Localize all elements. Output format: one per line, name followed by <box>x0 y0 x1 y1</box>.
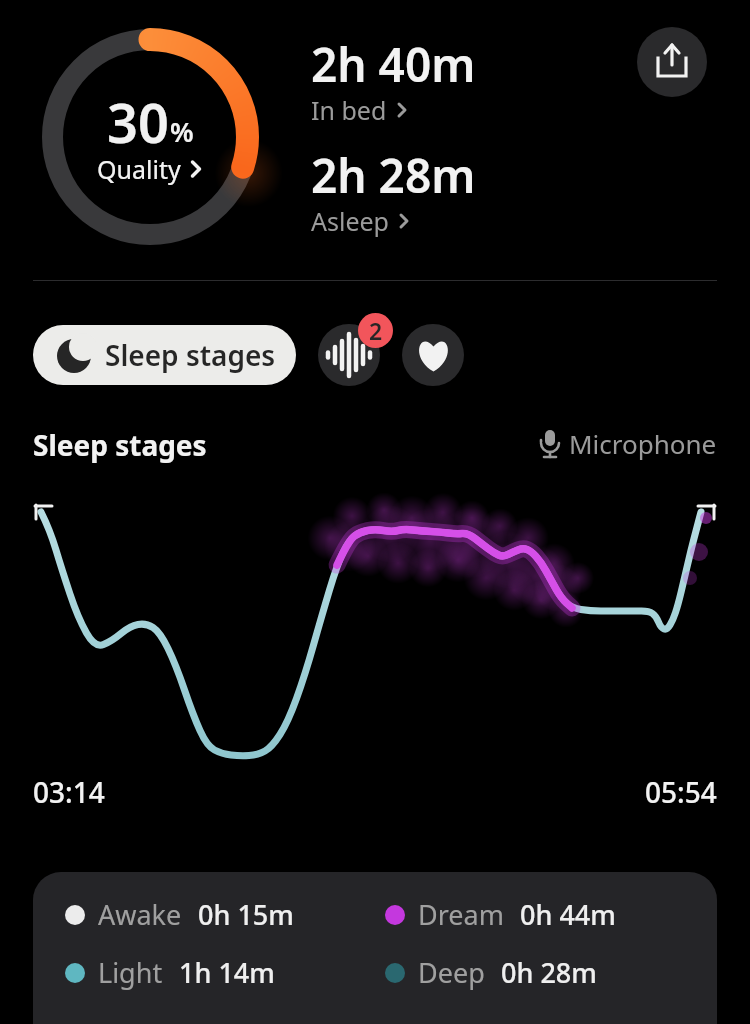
button[interactable]: Light <box>65 954 275 991</box>
staticText: 2h 40m <box>311 33 476 96</box>
staticText: 2h 28m <box>311 144 476 207</box>
staticText: 30 <box>107 85 169 159</box>
staticText: In bed <box>311 93 387 127</box>
button[interactable]: Sleep stages <box>33 325 296 385</box>
staticText: Light <box>98 954 163 991</box>
staticText: Sleep stages <box>105 336 276 374</box>
staticText: 0h 44m <box>520 896 616 933</box>
button[interactable] <box>637 27 707 97</box>
staticText: 03:14 <box>33 773 105 811</box>
staticText: % <box>170 113 194 150</box>
button[interactable]: Microphone <box>539 426 717 461</box>
button[interactable]: In bed <box>311 93 409 127</box>
staticText: Quality <box>97 152 181 186</box>
staticText: 2 <box>369 315 383 346</box>
button[interactable]: Awake <box>65 896 294 933</box>
button[interactable]: Dream <box>385 896 616 933</box>
button[interactable]: Asleep <box>311 204 411 238</box>
staticText: Dream <box>418 896 504 933</box>
staticText: Sleep stages <box>33 426 207 464</box>
staticText: 05:54 <box>645 773 717 811</box>
staticText: Microphone <box>569 426 717 461</box>
button[interactable]: 30 <box>42 29 258 245</box>
button[interactable]: Deep <box>385 954 597 991</box>
staticText: Deep <box>418 954 485 991</box>
staticText: 0h 28m <box>501 954 597 991</box>
staticText: 0h 15m <box>198 896 294 933</box>
button[interactable] <box>318 324 380 386</box>
staticText: Asleep <box>311 204 389 238</box>
staticText: 1h 14m <box>179 954 275 991</box>
staticText: Awake <box>98 896 182 933</box>
button[interactable] <box>402 324 464 386</box>
